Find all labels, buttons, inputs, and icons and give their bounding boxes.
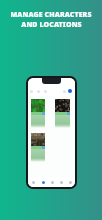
button[interactable]: Search <box>37 90 40 93</box>
button[interactable]: Menu <box>30 90 33 93</box>
button[interactable] <box>31 99 45 128</box>
button[interactable]: Notes <box>57 177 66 187</box>
button[interactable]: More <box>66 177 75 187</box>
button[interactable]: Home <box>28 177 38 187</box>
button[interactable]: Places <box>48 177 57 187</box>
button[interactable] <box>55 99 70 128</box>
button[interactable]: Filter <box>44 90 47 93</box>
button[interactable]: Profile <box>68 89 72 93</box>
button[interactable]: Characters <box>38 177 48 187</box>
staticText: AND LOCATIONS <box>21 20 82 30</box>
staticText: MANAGE CHARACTERS <box>10 10 92 20</box>
button[interactable] <box>31 133 45 162</box>
